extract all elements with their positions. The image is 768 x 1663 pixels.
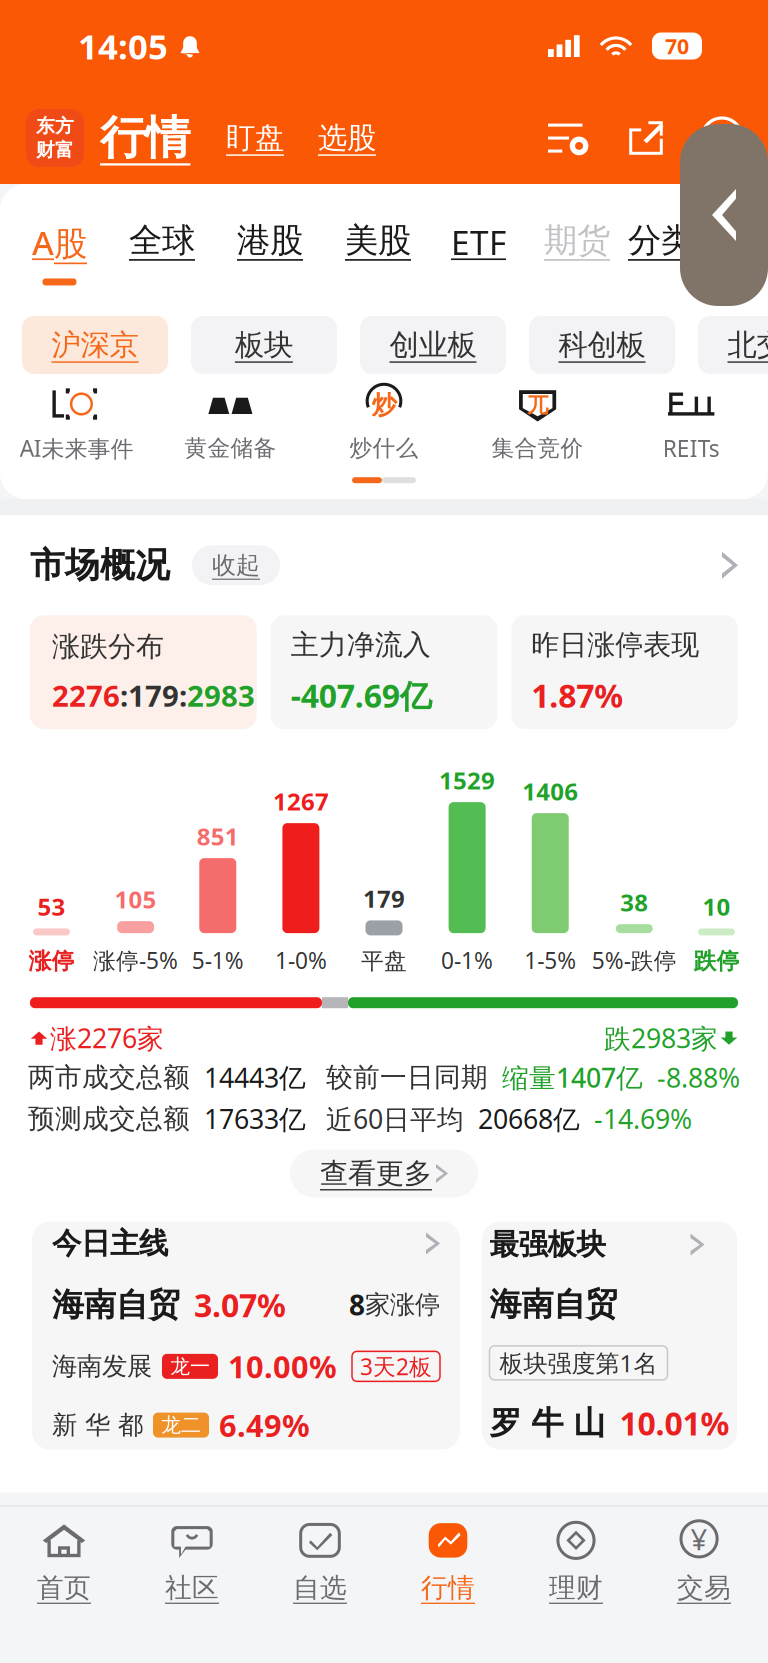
staticText: 14443亿 [204, 1060, 306, 1095]
staticText: 8 [349, 1286, 365, 1323]
button[interactable]: 炒 [307, 388, 461, 462]
staticText: 10.00% [228, 1346, 337, 1387]
staticText: 理财 [549, 1571, 603, 1604]
button[interactable]: 美股 [345, 220, 411, 261]
button[interactable]: 全球 [129, 220, 195, 261]
button[interactable]: 收起 [192, 545, 280, 585]
button[interactable]: Sort settings [548, 120, 590, 156]
button[interactable]: 分类 [628, 220, 694, 261]
staticText: 北交所 [727, 327, 768, 363]
staticText: : [179, 676, 187, 715]
staticText: 涨停 [29, 947, 75, 975]
button[interactable]: 港股 [237, 220, 303, 261]
staticText: 东方 [36, 115, 74, 137]
staticText: 海南自贸 [489, 1285, 617, 1324]
staticText: 港股 [237, 220, 303, 261]
staticText: 行情 [100, 110, 190, 166]
staticText: 全球 [129, 220, 195, 261]
staticText: 昨日涨停表现 [531, 628, 699, 662]
staticText: 1267 [273, 785, 329, 817]
staticText: 105 [115, 883, 157, 915]
button[interactable]: Open panel [680, 124, 768, 306]
staticText: 分类 [628, 220, 694, 261]
button[interactable]: 板块 [191, 316, 337, 374]
button[interactable]: 科创板 [529, 316, 675, 374]
staticText: 社区 [165, 1571, 219, 1604]
staticText: 6.49% [219, 1405, 310, 1445]
staticText: 集合竞价 [492, 434, 584, 462]
staticText: 3天2板 [360, 1351, 432, 1381]
staticText: 0-1% [441, 945, 493, 975]
staticText: 自选 [293, 1571, 347, 1604]
staticText: 龙一 [170, 1354, 210, 1379]
staticText: 兀 [527, 392, 548, 418]
staticText: A股 [32, 220, 87, 264]
staticText: 板块强度第1名 [499, 1347, 657, 1379]
staticText: 首页 [37, 1571, 91, 1604]
staticText: 14:05 [78, 23, 168, 69]
staticText: 179 [363, 882, 405, 914]
button[interactable]: 黄金储备 [154, 388, 307, 462]
staticText: 科创板 [558, 327, 645, 363]
staticText: 查看更多 [320, 1156, 432, 1191]
button[interactable]: 行情 [100, 110, 190, 166]
staticText: 沪深京 [51, 327, 138, 363]
button[interactable]: 行情 [384, 1507, 512, 1617]
button[interactable]: ETF [451, 220, 506, 264]
button[interactable]: 社区 [128, 1507, 256, 1617]
staticText: 较前一日同期 [326, 1061, 488, 1094]
button[interactable]: REITs [614, 387, 768, 463]
button[interactable]: ¥ [640, 1507, 768, 1617]
staticText: 851 [197, 820, 239, 852]
staticText: 盯盘 [226, 120, 284, 156]
staticText: 期货 [544, 220, 610, 261]
button[interactable]: 理财 [512, 1507, 640, 1617]
button[interactable]: 最强板块 [482, 1221, 737, 1449]
staticText: 10.01% [619, 1402, 729, 1444]
button[interactable]: 首页 [0, 1507, 128, 1617]
staticText: 黄金储备 [184, 434, 276, 462]
staticText: 缩量1407亿 [502, 1060, 643, 1095]
staticText: 新 华 都 [52, 1409, 143, 1441]
button[interactable]: A股 [32, 220, 87, 285]
staticText: 1-0% [275, 945, 327, 975]
button[interactable]: 创业板 [360, 316, 506, 374]
staticText: 1-5% [524, 945, 576, 975]
staticText: 选股 [318, 120, 376, 156]
button[interactable]: 自选 [256, 1507, 384, 1617]
staticText: 5%-跌停 [592, 945, 677, 975]
button[interactable]: Search [702, 118, 742, 158]
staticText: 5-1% [192, 945, 244, 975]
button[interactable]: Share [626, 118, 666, 158]
staticText: 3.07% [194, 1283, 286, 1326]
staticText: -8.88% [657, 1060, 740, 1095]
staticText: 1529 [439, 764, 495, 796]
button[interactable]: 北交所 [698, 316, 768, 374]
staticText: 近60日平均 [326, 1101, 464, 1136]
staticText: 两市成交总额 [28, 1061, 190, 1094]
button[interactable]: 沪深京 [22, 316, 168, 374]
staticText: 2276 [52, 676, 120, 715]
staticText: 10 [702, 890, 730, 922]
staticText: 市场概况 [30, 544, 170, 586]
button[interactable]: 盯盘 [226, 120, 284, 156]
button[interactable]: 选股 [318, 120, 376, 156]
staticText: 涨2276家 [50, 1020, 164, 1056]
staticText: 最强板块 [489, 1226, 605, 1262]
staticText: REITs [663, 433, 720, 463]
staticText: 罗 牛 山 [489, 1403, 605, 1443]
staticText: 179 [128, 676, 179, 715]
staticText: 美股 [345, 220, 411, 261]
button[interactable]: 今日主线 [32, 1221, 460, 1449]
staticText: -14.69% [594, 1101, 692, 1136]
staticText: 海南自贸 [52, 1285, 180, 1324]
staticText: 53 [38, 890, 66, 922]
button[interactable]: 兀 [461, 388, 614, 462]
staticText: 2983 [187, 676, 255, 715]
staticText: 1.87% [531, 674, 623, 717]
button[interactable]: 查看更多 [290, 1149, 478, 1197]
staticText: 创业板 [389, 327, 476, 363]
button[interactable]: AI未来事件 [0, 387, 154, 463]
staticText: 跌2983家 [604, 1020, 718, 1056]
staticText: 板块 [235, 327, 293, 363]
